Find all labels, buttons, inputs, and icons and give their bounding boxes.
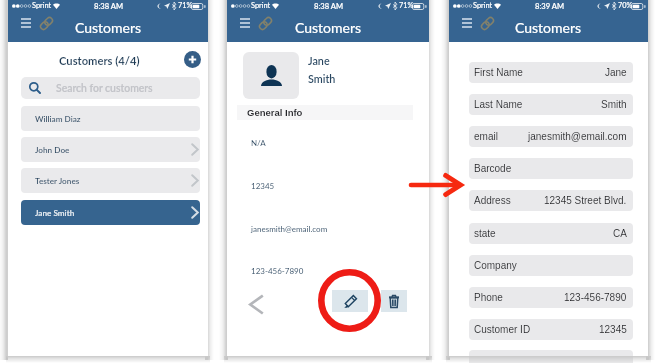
staticText: 8:39 AM bbox=[535, 1, 565, 10]
button[interactable]: Link bbox=[477, 13, 497, 33]
button[interactable]: Jane Smith bbox=[21, 200, 200, 225]
button[interactable]: First Name bbox=[469, 62, 633, 83]
button[interactable]: Link bbox=[36, 13, 56, 33]
staticText: state bbox=[474, 228, 496, 239]
staticText: 71% bbox=[399, 1, 414, 10]
staticText: John Doe bbox=[35, 145, 70, 155]
button[interactable]: William Diaz bbox=[21, 106, 200, 131]
staticText: 12345 bbox=[599, 324, 627, 335]
button[interactable]: state bbox=[469, 223, 633, 244]
staticText: Customers bbox=[295, 19, 362, 36]
staticText: 71% bbox=[178, 1, 193, 10]
staticText: Barcode bbox=[474, 163, 512, 174]
button[interactable]: Add customer bbox=[184, 51, 201, 68]
staticText: General Info bbox=[247, 107, 303, 118]
staticText: Customers bbox=[515, 19, 582, 36]
staticText: 123-456-7890 bbox=[564, 292, 627, 303]
staticText: Sprint bbox=[473, 1, 493, 10]
button[interactable]: Address bbox=[469, 190, 633, 211]
staticText: 12345 bbox=[251, 181, 275, 191]
button[interactable]: Link bbox=[255, 13, 275, 33]
button[interactable]: John Doe bbox=[21, 137, 200, 162]
staticText: Smith bbox=[601, 99, 627, 110]
staticText: 8:38 AM bbox=[94, 1, 124, 10]
staticText: Tester Jones bbox=[35, 176, 80, 186]
button[interactable]: Menu bbox=[16, 13, 36, 33]
staticText: Company bbox=[474, 260, 517, 271]
staticText: First Name bbox=[474, 67, 523, 78]
staticText: Sprint bbox=[32, 1, 52, 10]
staticText: Search for customers bbox=[56, 82, 153, 94]
staticText: 8:38 AM bbox=[314, 1, 344, 10]
staticText: Address bbox=[474, 195, 511, 206]
staticText: Customers bbox=[75, 19, 142, 36]
button[interactable]: Edit bbox=[332, 290, 368, 312]
button[interactable]: Menu bbox=[235, 13, 255, 33]
staticText: Smith bbox=[308, 72, 336, 85]
staticText: Phone bbox=[474, 292, 503, 303]
staticText: janesmith@email.com bbox=[528, 131, 627, 142]
button[interactable]: Last Name bbox=[469, 94, 633, 115]
button[interactable]: Customer ID bbox=[469, 319, 633, 340]
button[interactable]: Company bbox=[469, 255, 633, 276]
button[interactable]: Menu bbox=[457, 13, 477, 33]
staticText: William Diaz bbox=[35, 114, 81, 124]
button[interactable]: Tester Jones bbox=[21, 168, 200, 193]
staticText: 70% bbox=[618, 1, 633, 10]
staticText: N/A bbox=[251, 138, 266, 148]
button[interactable] bbox=[469, 350, 633, 363]
button[interactable]: Barcode bbox=[469, 158, 633, 179]
button[interactable]: Back bbox=[244, 291, 268, 317]
staticText: email bbox=[474, 131, 498, 142]
staticText: Customers (4/4) bbox=[59, 54, 140, 67]
button[interactable]: Phone bbox=[469, 287, 633, 308]
staticText: janesmith@email.com bbox=[251, 224, 328, 234]
staticText: Customer ID bbox=[474, 324, 531, 335]
staticText: Sprint bbox=[251, 1, 271, 10]
button[interactable]: Delete bbox=[381, 290, 407, 312]
staticText: Jane Smith bbox=[35, 208, 75, 218]
button[interactable]: Search for customers bbox=[21, 77, 200, 99]
staticText: Jane bbox=[605, 67, 627, 78]
staticText: CA bbox=[613, 228, 627, 239]
staticText: 123-456-7890 bbox=[251, 266, 304, 276]
staticText: 12345 Street Blvd. bbox=[544, 195, 627, 206]
staticText: Last Name bbox=[474, 99, 523, 110]
staticText: Jane bbox=[308, 54, 330, 67]
button[interactable]: email bbox=[469, 126, 633, 147]
